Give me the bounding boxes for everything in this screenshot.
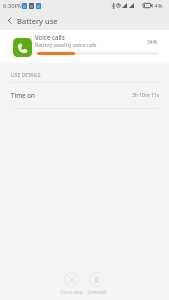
- staticText: 6:30PM: [3, 2, 24, 10]
- staticText: 3h 10m 11s: [132, 92, 160, 99]
- staticText: Battery used by voice calls: [35, 42, 97, 49]
- button[interactable]: Uninstall: [84, 272, 109, 295]
- button[interactable]: Force stop: [59, 272, 84, 295]
- button[interactable]: Voice calls: [0, 30, 169, 63]
- button[interactable]: Time on: [0, 83, 169, 108]
- staticText: 14%: [151, 2, 163, 10]
- staticText: 34%: [147, 39, 157, 46]
- staticText: Time on: [11, 91, 35, 100]
- staticText: USE DETAILS: [11, 72, 41, 79]
- staticText: Uninstall: [87, 289, 107, 295]
- button[interactable]: Back: [2, 11, 18, 30]
- staticText: Voice calls: [35, 33, 65, 41]
- staticText: Battery use: [17, 16, 58, 26]
- staticText: Force stop: [60, 289, 83, 295]
